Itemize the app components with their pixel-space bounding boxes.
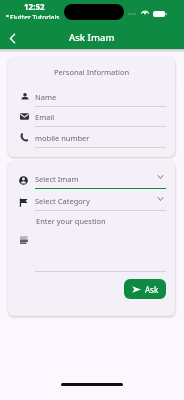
staticText: 12:52 [24, 1, 45, 12]
staticText: Select Category [35, 196, 90, 206]
button[interactable]: mobile number [8, 129, 175, 149]
staticText: Personal Information [8, 67, 175, 77]
staticText: Ask Imam [69, 31, 115, 44]
staticText: Flutter Tutorials [10, 13, 60, 19]
button[interactable]: Back [2, 28, 22, 48]
button[interactable]: Select Category [8, 194, 175, 212]
staticText: Enter your question [36, 216, 106, 226]
staticText: Name [35, 92, 57, 102]
staticText: Ask [145, 284, 159, 295]
staticText: Select Imam [35, 174, 79, 184]
button[interactable]: Name [8, 88, 175, 108]
button[interactable]: Ask [124, 279, 166, 299]
button[interactable]: Select Imam [8, 172, 175, 190]
staticText: mobile number [35, 133, 90, 143]
staticText: Email [35, 112, 55, 122]
button[interactable]: Email [8, 108, 175, 128]
